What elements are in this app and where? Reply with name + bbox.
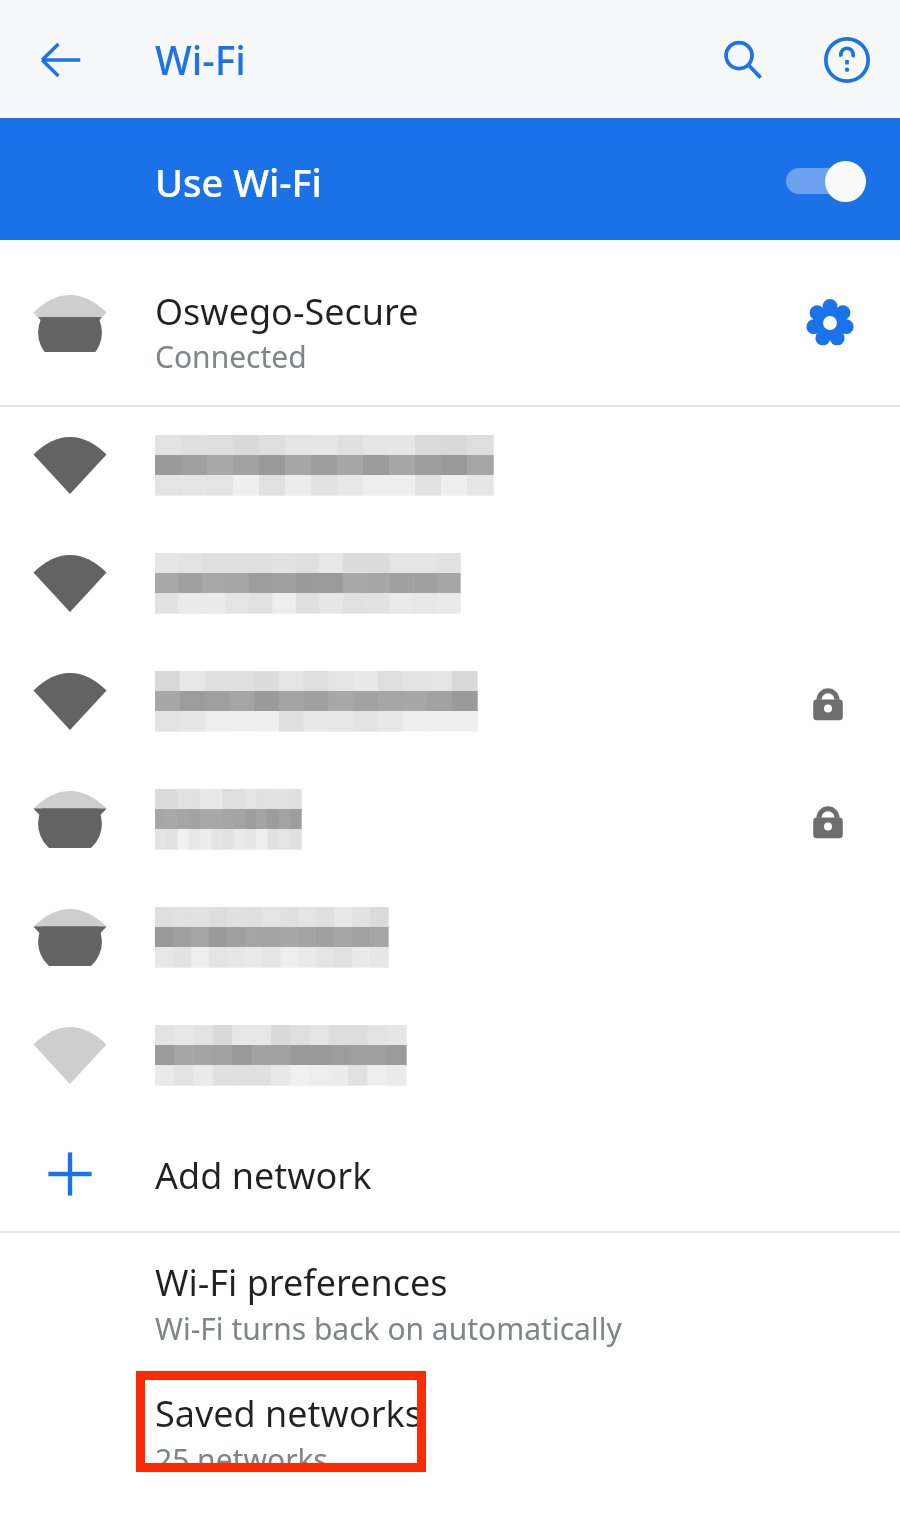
button[interactable]: Use Wi-Fi	[0, 118, 900, 240]
button[interactable]	[0, 997, 900, 1115]
staticText: Wi-Fi preferences	[155, 1258, 448, 1307]
staticText: Oswego-Secure	[155, 287, 419, 336]
other: Secured	[800, 793, 856, 849]
button[interactable]	[0, 407, 900, 525]
button[interactable]: Secured	[0, 643, 900, 761]
staticText: Connected	[155, 336, 307, 377]
staticText: 25 networks	[155, 1439, 328, 1480]
staticText: Use Wi-Fi	[155, 156, 322, 208]
button[interactable]: Use Wi-Fi	[780, 160, 880, 202]
button[interactable]: Add network	[0, 1115, 900, 1231]
button[interactable]: Saved networks	[0, 1363, 900, 1496]
button[interactable]: Secured	[0, 761, 900, 879]
button[interactable]: Oswego-Secure	[0, 240, 900, 405]
button[interactable]: Network settings	[795, 288, 865, 358]
button[interactable]: Search	[708, 25, 778, 95]
other: Secured	[800, 675, 856, 731]
button[interactable]: Wi-Fi preferences	[0, 1233, 900, 1363]
button[interactable]	[0, 525, 900, 643]
button[interactable]	[0, 879, 900, 997]
button[interactable]: Help	[812, 25, 882, 95]
button[interactable]: Back	[26, 25, 96, 95]
staticText: Wi-Fi	[155, 33, 246, 86]
staticText: Add network	[155, 1151, 372, 1200]
staticText: Wi-Fi turns back on automatically	[155, 1308, 622, 1349]
staticText: Saved networks	[155, 1389, 423, 1438]
